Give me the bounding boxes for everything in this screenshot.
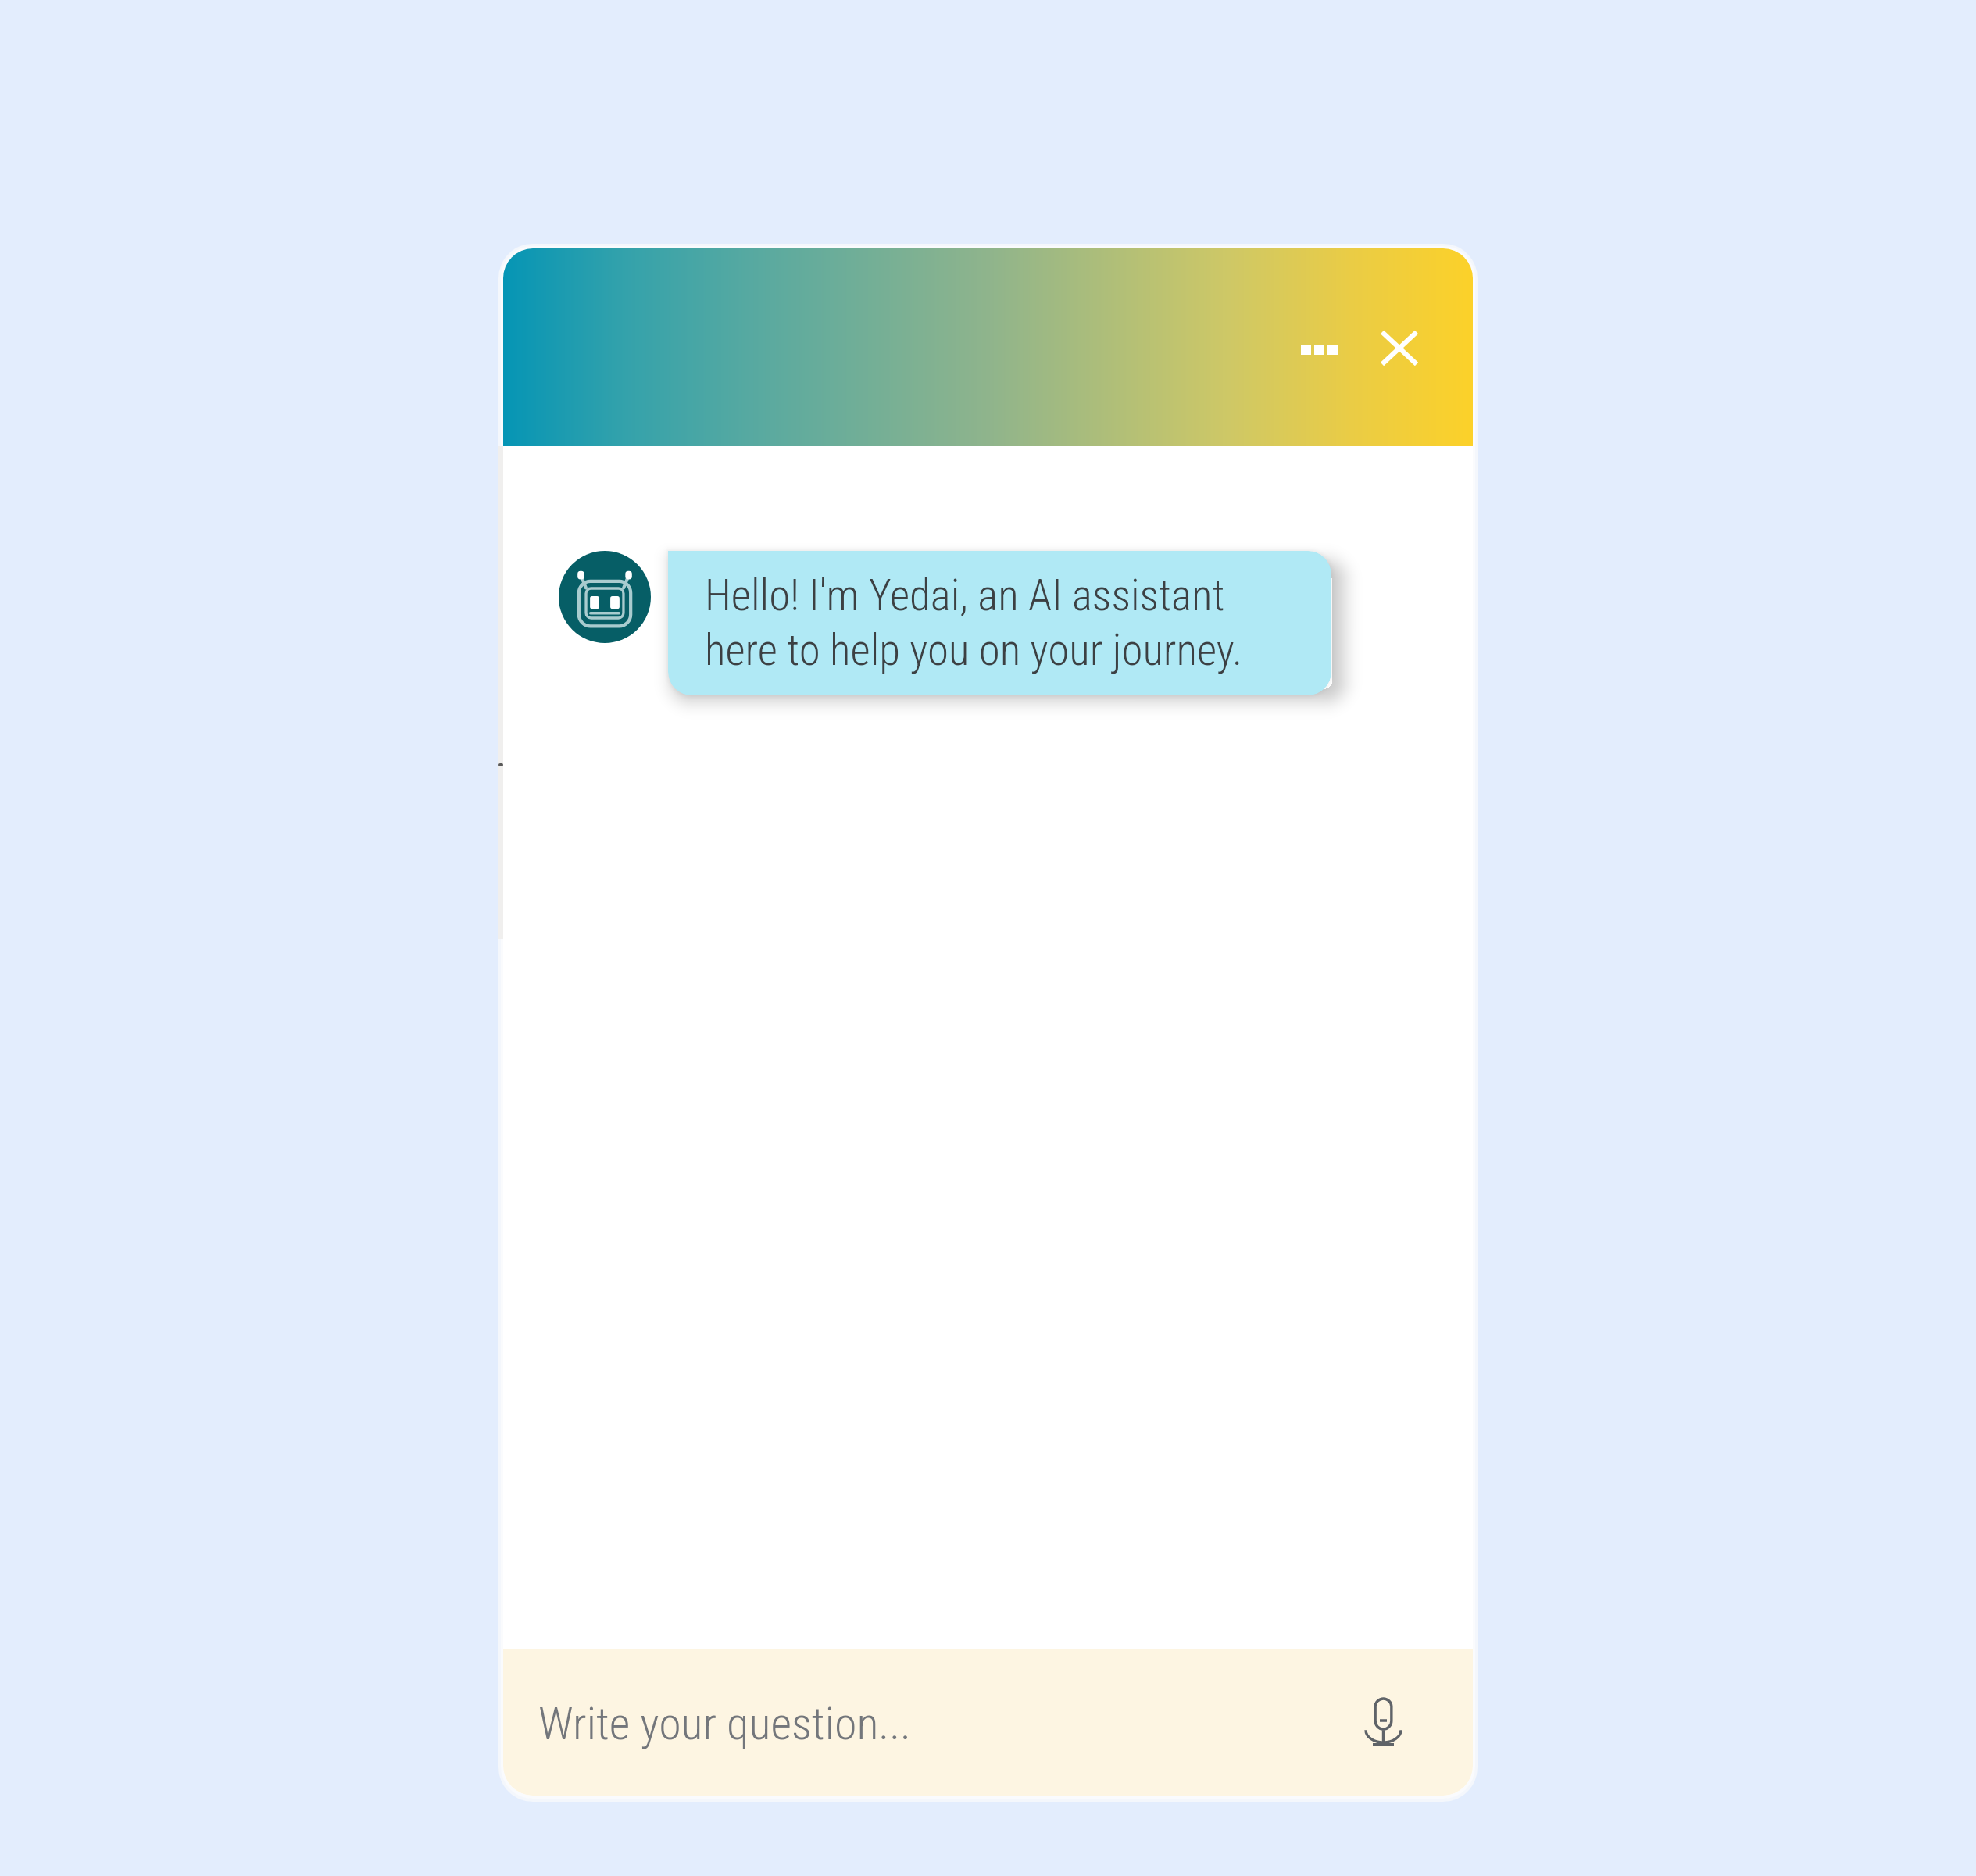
button[interactable]: Voice input: [1349, 1688, 1417, 1756]
button[interactable]: Close: [1365, 311, 1434, 384]
button[interactable]: More options: [1266, 315, 1372, 384]
button[interactable]: Hello! I'm Yedai, an AI assistant here t…: [668, 551, 1331, 695]
button[interactable]: Write your question...: [503, 1649, 1473, 1796]
button[interactable]: Assistant avatar: [559, 551, 651, 643]
staticText: Write your question...: [538, 1697, 911, 1750]
staticText: Hello! I'm Yedai, an AI assistant here t…: [705, 570, 1243, 676]
